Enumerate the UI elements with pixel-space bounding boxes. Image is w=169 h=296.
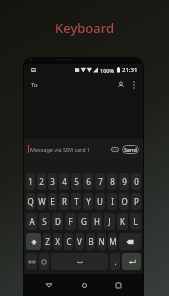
button[interactable]: W bbox=[37, 193, 46, 210]
staticText: Send bbox=[124, 146, 137, 153]
button[interactable]: Enter bbox=[122, 253, 141, 270]
button[interactable]: F bbox=[65, 213, 76, 230]
staticText: X bbox=[55, 236, 60, 247]
button[interactable]: 5 bbox=[71, 173, 81, 190]
staticText: 6 bbox=[86, 176, 91, 187]
staticText: 2 bbox=[39, 176, 44, 187]
button[interactable]: L bbox=[130, 213, 141, 230]
staticText: P bbox=[134, 196, 139, 207]
button[interactable]: 6 bbox=[83, 173, 93, 190]
staticText: O bbox=[121, 196, 128, 207]
staticText: 5 bbox=[74, 176, 79, 187]
staticText: J bbox=[108, 216, 111, 227]
button[interactable]: 0 bbox=[131, 173, 141, 190]
button[interactable]: V bbox=[75, 233, 84, 250]
staticText: 21:31 bbox=[122, 66, 138, 74]
button[interactable]: Emoji bbox=[39, 253, 49, 270]
button[interactable]: K bbox=[117, 213, 128, 230]
staticText: R bbox=[62, 196, 67, 207]
button[interactable]: D bbox=[52, 213, 63, 230]
button[interactable]: Send bbox=[122, 145, 139, 154]
staticText: K bbox=[120, 216, 125, 227]
button[interactable]: Insert emoji bbox=[109, 144, 120, 155]
button[interactable]: 3 bbox=[48, 173, 57, 190]
button[interactable]: 9 bbox=[119, 173, 129, 190]
staticText: 9 bbox=[122, 176, 127, 187]
staticText: 1 bbox=[28, 176, 33, 187]
staticText: . bbox=[114, 256, 117, 267]
staticText: Keyboard bbox=[55, 19, 115, 37]
button[interactable]: 2 bbox=[37, 173, 46, 190]
button[interactable]: P bbox=[131, 193, 141, 210]
staticText: Y bbox=[86, 196, 91, 207]
staticText: Q bbox=[27, 196, 34, 207]
button[interactable]: R bbox=[59, 193, 69, 210]
button[interactable]: . bbox=[110, 253, 120, 270]
staticText: 7 bbox=[98, 176, 103, 187]
button[interactable]: T bbox=[71, 193, 81, 210]
staticText: T bbox=[74, 196, 79, 207]
button[interactable]: Recent apps bbox=[108, 275, 128, 295]
button[interactable]: Backspace bbox=[119, 233, 141, 250]
staticText: A bbox=[29, 216, 35, 227]
staticText: C bbox=[66, 236, 72, 247]
button[interactable]: Contacts bbox=[114, 78, 128, 92]
staticText: 3 bbox=[50, 176, 55, 187]
staticText: I bbox=[111, 196, 114, 207]
button[interactable]: B bbox=[86, 233, 95, 250]
staticText: L bbox=[133, 216, 138, 227]
staticText: V bbox=[77, 236, 82, 247]
button[interactable]: H bbox=[91, 213, 102, 230]
staticText: W bbox=[38, 196, 46, 207]
button[interactable]: I bbox=[107, 193, 117, 210]
button[interactable]: N bbox=[97, 233, 106, 250]
button[interactable]: Q bbox=[26, 193, 35, 210]
staticText: D bbox=[55, 216, 61, 227]
button[interactable]: C bbox=[64, 233, 73, 250]
button[interactable]: Shift bbox=[26, 233, 41, 250]
staticText: F bbox=[68, 216, 73, 227]
button[interactable]: A bbox=[26, 213, 37, 230]
staticText: H bbox=[94, 216, 100, 227]
button[interactable]: E bbox=[48, 193, 57, 210]
staticText: E bbox=[50, 196, 55, 207]
button[interactable]: O bbox=[119, 193, 129, 210]
button[interactable]: Z bbox=[43, 233, 51, 250]
button[interactable]: 1 bbox=[26, 173, 35, 190]
button[interactable]: U bbox=[95, 193, 105, 210]
staticText: Z bbox=[45, 236, 50, 247]
button[interactable]: Home bbox=[74, 275, 94, 295]
staticText: To bbox=[31, 81, 38, 89]
button[interactable]: 8 bbox=[107, 173, 117, 190]
staticText: Message via SIM card 1 bbox=[30, 146, 91, 153]
button[interactable]: M bbox=[108, 233, 117, 250]
staticText: N bbox=[98, 236, 105, 247]
staticText: U bbox=[97, 196, 103, 207]
button[interactable]: J bbox=[104, 213, 115, 230]
button[interactable]: Y bbox=[83, 193, 93, 210]
staticText: 8 bbox=[110, 176, 115, 187]
button[interactable]: S bbox=[39, 213, 50, 230]
button[interactable]: G bbox=[78, 213, 89, 230]
button[interactable]: Space bbox=[51, 253, 108, 270]
button[interactable]: 7 bbox=[95, 173, 105, 190]
staticText: S bbox=[42, 216, 47, 227]
button[interactable]: X bbox=[53, 233, 62, 250]
button[interactable]: Back bbox=[39, 275, 59, 295]
staticText: B bbox=[88, 236, 94, 247]
button[interactable]: More options bbox=[128, 79, 140, 91]
staticText: M bbox=[109, 236, 117, 247]
staticText: 0 bbox=[134, 176, 139, 187]
staticText: 100% bbox=[100, 67, 115, 74]
button[interactable]: Symbols bbox=[26, 253, 37, 270]
button[interactable]: 4 bbox=[59, 173, 69, 190]
staticText: G bbox=[81, 216, 87, 227]
staticText: 4 bbox=[62, 176, 67, 187]
